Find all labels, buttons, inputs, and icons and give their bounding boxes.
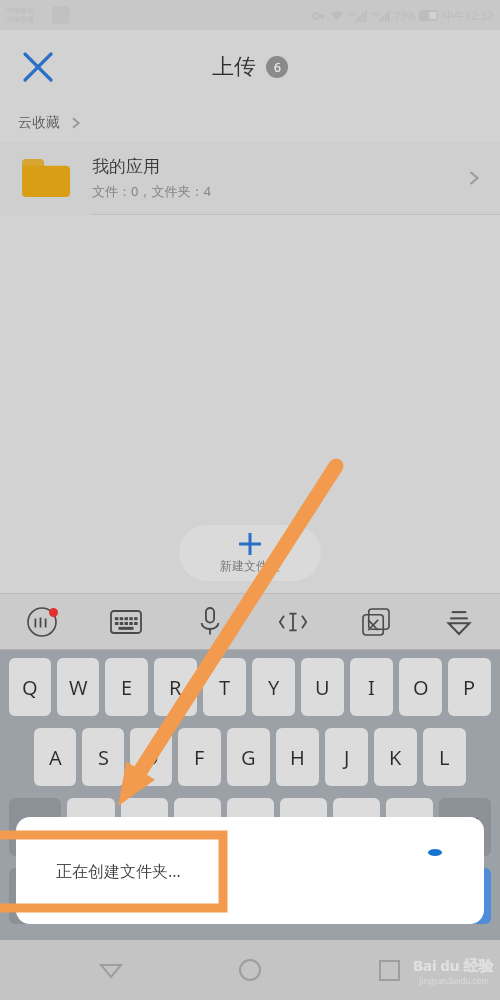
button[interactable]: U [301,658,344,716]
button[interactable]: Hide keyboard [417,594,500,649]
staticText: 4G [371,10,379,18]
button[interactable]: 新建文件夹 [179,525,321,581]
staticText: K [389,744,402,771]
button[interactable]: G [227,728,270,786]
staticText: U [315,674,330,701]
staticText: L [439,744,450,771]
staticText: 2G [348,10,356,18]
staticText: H [290,744,305,771]
button[interactable]: Move cursor [251,594,334,649]
button[interactable]: D [130,728,172,786]
staticText: jingyan.baidu.com [419,975,489,986]
button[interactable]: Keyboard [84,594,168,649]
button[interactable]: 云收藏 [18,104,500,142]
staticText: W [69,674,88,701]
button[interactable]: Q [9,658,51,716]
button[interactable]: C [174,798,221,856]
staticText: 云收藏 [18,114,60,132]
button[interactable]: R [154,658,197,716]
button[interactable]: W [57,658,99,716]
staticText: , [94,885,99,907]
button[interactable]: L [423,728,466,786]
button[interactable]: Close [14,43,62,91]
staticText: 文件：0，文件夹：4 [92,182,211,200]
staticText: ?123 [21,885,56,907]
button[interactable]: A [34,728,76,786]
staticText: O [413,674,429,701]
button[interactable]: Back [83,942,139,998]
staticText: B [297,814,310,841]
staticText: 中国联通 [6,15,34,24]
button[interactable]: Shift [9,798,61,856]
button[interactable]: 我的应用 [0,142,500,214]
staticText: C [191,814,204,841]
button[interactable]: H [276,728,319,786]
button[interactable]: B [280,798,327,856]
button[interactable]: Input method [0,594,84,649]
staticText: N [349,814,365,841]
staticText: D [144,744,159,771]
button[interactable]: T [203,658,246,716]
staticText: M [400,814,419,841]
staticText: 正在创建文件夹... [56,860,181,882]
staticText: A [49,744,62,771]
staticText: Z [85,814,97,841]
button[interactable]: J [325,728,368,786]
staticText: English [223,887,271,906]
staticText: Bai du 经验 [413,955,494,975]
button[interactable]: Clipboard [334,594,417,649]
staticText: 新建文件夹 [220,558,280,573]
staticText: G [241,744,256,771]
button[interactable]: N [333,798,380,856]
staticText: Y [268,674,280,701]
staticText: 中午12:32 [443,8,494,23]
button[interactable]: Backspace [439,798,491,856]
staticText: 73% [394,8,416,23]
button[interactable]: Recents [361,942,417,998]
button[interactable]: Enter [427,868,491,924]
button[interactable]: I [350,658,393,716]
staticText: 我的应用 [92,156,160,177]
button[interactable]: O [399,658,442,716]
button[interactable]: , [73,868,119,924]
button[interactable]: Z [67,798,115,856]
button[interactable]: English [125,868,369,924]
staticText: V [245,814,257,841]
button[interactable]: X [121,798,168,856]
button[interactable]: S [82,728,124,786]
staticText: S [98,744,109,771]
staticText: Q [22,674,38,701]
staticText: T [219,674,231,701]
staticText: E [121,674,133,701]
button[interactable]: ?123 [9,868,67,924]
staticText: F [194,744,205,771]
button[interactable]: V [227,798,274,856]
button[interactable]: E [105,658,148,716]
staticText: P [463,674,476,701]
staticText: I [368,674,375,701]
staticText: R [169,674,182,701]
staticText: 上传 [212,53,256,81]
staticText: 6 [274,59,281,75]
button[interactable]: Voice input [168,594,251,649]
button[interactable]: P [448,658,491,716]
button[interactable]: M [386,798,433,856]
staticText: 中国移动 [6,6,34,15]
button[interactable]: Y [252,658,295,716]
button[interactable]: Home [222,942,278,998]
staticText: J [344,744,350,771]
staticText: X [139,814,151,841]
button[interactable]: F [178,728,221,786]
button[interactable]: K [374,728,417,786]
